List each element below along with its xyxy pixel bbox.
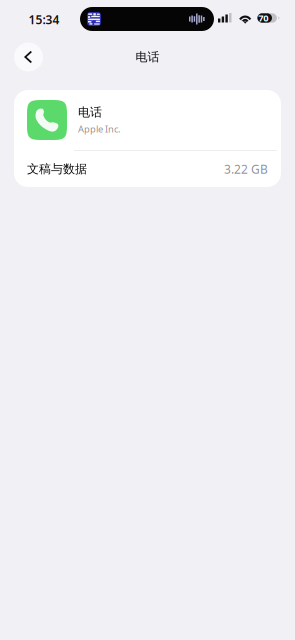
staticText: 15:34 [28,11,59,27]
button[interactable]: Back [14,42,43,71]
staticText: Apple Inc. [78,123,121,135]
staticText: 电话 [78,105,102,120]
staticText: 70 [258,12,268,24]
staticText: 电话 [135,50,159,64]
staticText: 文稿与数据 [27,162,87,176]
button[interactable]: 电话 [14,90,281,150]
staticText: 3.22 GB [224,161,268,177]
button[interactable]: 文稿与数据 [14,151,281,187]
